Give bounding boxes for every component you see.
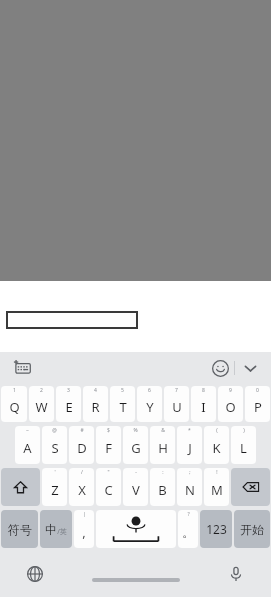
staticText: 7 [175,387,178,394]
staticText: 6 [148,387,151,394]
staticText: # [80,427,84,434]
staticText: D [77,439,87,457]
staticText: F [105,439,112,457]
button[interactable]: Change language [22,561,48,587]
staticText: R [91,398,100,416]
button[interactable]: $ [96,426,121,464]
staticText: 中 [45,522,57,537]
staticText: 9 [229,387,232,394]
staticText: Q [9,398,20,416]
button[interactable]: ! [204,468,229,506]
staticText: & [161,427,165,434]
staticText: , [82,523,86,541]
button[interactable]: 4 [83,386,108,422]
button[interactable]: 3 [56,386,81,422]
button[interactable]: @ [42,426,67,464]
button[interactable]: " [96,468,121,506]
button[interactable]: : [150,468,175,506]
button[interactable]: Space [96,510,176,548]
button[interactable]: 7 [164,386,189,422]
button[interactable]: | [74,510,94,548]
staticText: Demo [6,252,83,287]
staticText: 8 [202,387,205,394]
staticText: P [254,398,262,416]
staticText: Z [51,481,59,499]
staticText: @ [52,427,57,434]
button[interactable]: 2 [29,386,54,422]
staticText: O [225,398,236,416]
staticText: 。 [182,524,195,540]
staticText: ~ [26,427,29,434]
button[interactable]: Shift [1,468,40,506]
button[interactable]: 符号 [1,510,38,548]
staticText: /英 [57,527,67,537]
button[interactable]: # [69,426,94,464]
staticText: E [65,398,73,416]
staticText: ? [187,511,190,518]
staticText: - [135,469,137,476]
button[interactable]: ) [231,426,256,464]
button[interactable]: 0 [245,386,270,422]
staticText: M [211,481,223,499]
staticText: ! [216,469,218,476]
staticText: " [107,469,110,476]
staticText: G [131,439,141,457]
staticText: 符号 [8,522,32,537]
staticText: I [201,398,206,416]
button[interactable]: & [150,426,175,464]
button[interactable]: Backspace [231,468,270,506]
button[interactable]: Keyboard tools [10,356,34,380]
staticText: 123 [206,521,227,537]
staticText: $ [107,427,110,434]
staticText: / [81,469,83,476]
button[interactable]: * [177,426,202,464]
button[interactable]: ~ [15,426,40,464]
staticText: 5 [121,387,124,394]
button[interactable]: Hide keyboard [235,353,265,383]
staticText: J [188,439,192,457]
button[interactable] [6,311,138,329]
button[interactable]: 开始 [234,510,270,548]
staticText: S [51,439,59,457]
staticText: ; [189,469,191,476]
button[interactable]: 123 [200,510,232,548]
staticText: U [172,398,182,416]
staticText: 4 [94,387,97,394]
staticText: 1 [13,387,16,394]
button[interactable]: Voice input [223,561,249,587]
button[interactable]: / [69,468,94,506]
staticText: A [23,439,32,457]
button[interactable]: 中 [40,510,72,548]
staticText: 3 [67,387,70,394]
staticText: ' [54,469,56,476]
staticText: X [78,481,86,499]
button[interactable]: 1 [1,386,27,422]
staticText: 开始 [240,522,264,537]
staticText: Y [146,398,154,416]
button[interactable]: 9 [218,386,243,422]
staticText: | [83,511,86,518]
staticText: : [162,469,164,476]
button[interactable]: Emoji [206,354,234,382]
staticText: B [158,481,167,499]
staticText: ( [216,427,218,434]
button[interactable]: - [123,468,148,506]
button[interactable]: ? [178,510,198,548]
staticText: * [188,427,191,434]
button[interactable]: 8 [191,386,216,422]
button[interactable]: % [123,426,148,464]
staticText: N [185,481,195,499]
button[interactable]: 6 [137,386,162,422]
button[interactable]: ; [177,468,202,506]
staticText: 0 [256,387,259,394]
staticText: K [212,439,221,457]
staticText: H [158,439,168,457]
staticText: V [132,481,140,499]
button[interactable]: ' [42,468,67,506]
staticText: ) [243,427,245,434]
button[interactable]: ( [204,426,229,464]
staticText: C [104,481,113,499]
staticText: W [35,398,48,416]
button[interactable]: 5 [110,386,135,422]
staticText: L [240,439,247,457]
